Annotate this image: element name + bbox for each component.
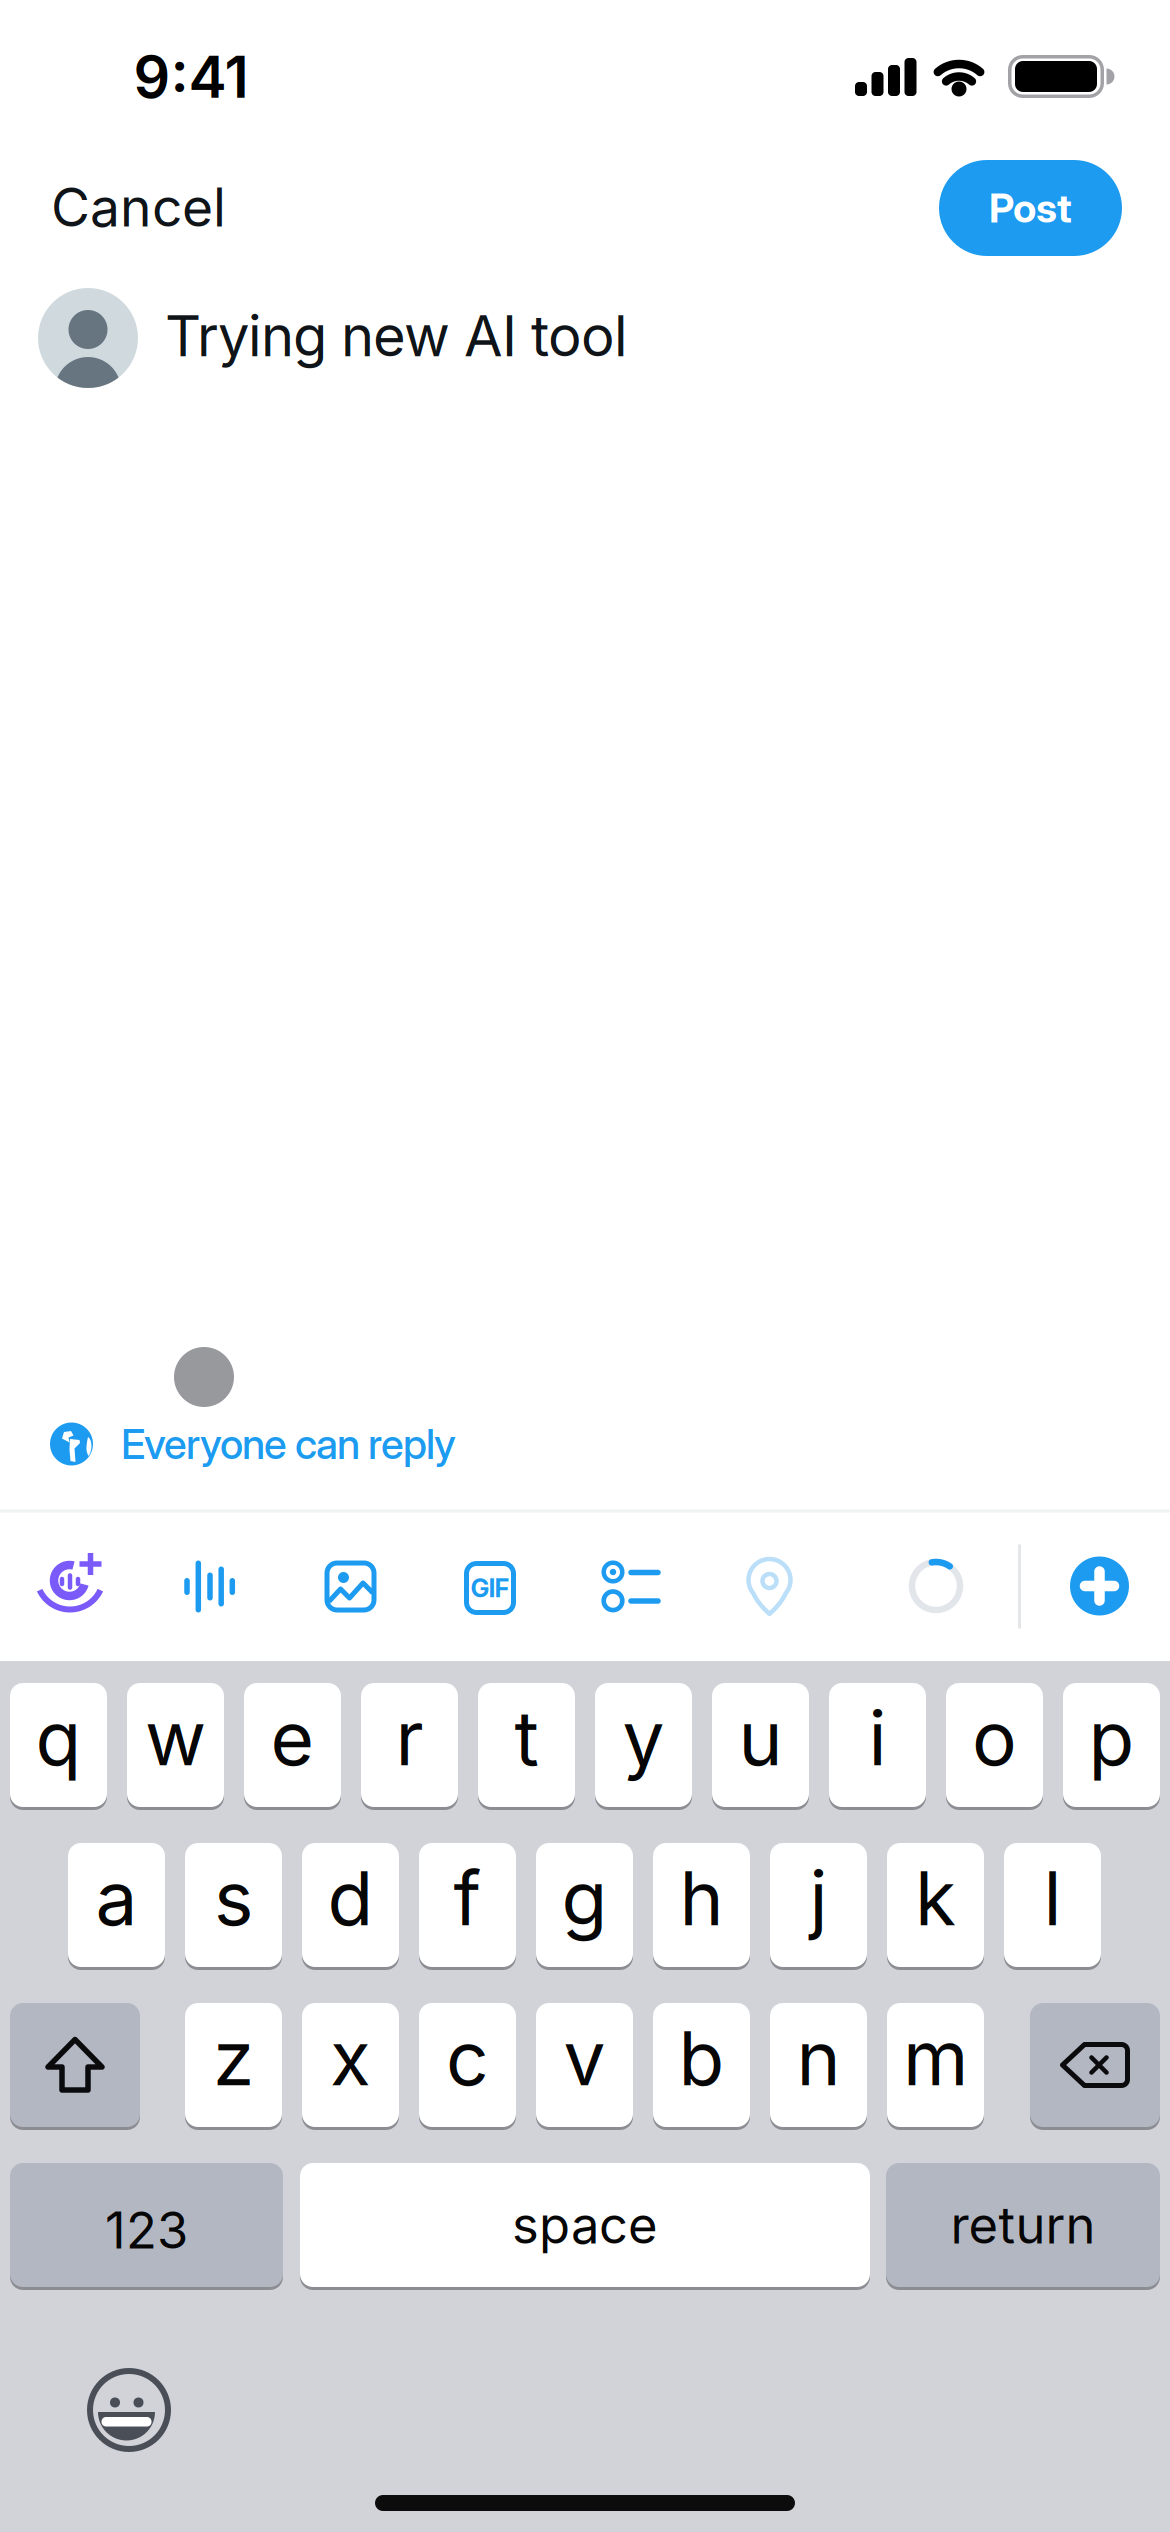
button[interactable]: d [302, 1843, 399, 1967]
button[interactable]: i [829, 1683, 926, 1807]
button[interactable]: 123 [10, 2163, 283, 2287]
staticText: z [213, 2014, 254, 2102]
button[interactable]: h [653, 1843, 750, 1967]
button[interactable]: Add another post [1070, 1556, 1129, 1615]
staticText: y [622, 1694, 664, 1782]
button[interactable]: e [244, 1683, 341, 1807]
button[interactable]: Shift [10, 2003, 140, 2127]
button[interactable]: Emoji [85, 2366, 173, 2454]
button[interactable]: w [127, 1683, 224, 1807]
staticText: return [950, 2195, 1095, 2255]
button[interactable]: r [361, 1683, 458, 1807]
button[interactable]: Add photos or video [324, 1560, 376, 1612]
button[interactable]: l [1004, 1843, 1101, 1967]
button[interactable]: Record audio [182, 1558, 238, 1614]
button[interactable]: q [10, 1683, 107, 1807]
staticText: u [738, 1694, 782, 1782]
staticText: w [145, 1694, 206, 1782]
staticText: a [95, 1854, 137, 1942]
staticText: x [330, 2014, 371, 2102]
button[interactable]: Everyone can reply [0, 0, 1170, 2532]
staticText: GIF [470, 1573, 509, 1603]
staticText: h [679, 1854, 723, 1942]
staticText: c [446, 2014, 489, 2102]
staticText: i [868, 1694, 886, 1782]
staticText: b [678, 2014, 724, 2102]
button[interactable]: g [536, 1843, 633, 1967]
button[interactable]: Add poll [598, 1554, 662, 1618]
button[interactable]: Post [939, 160, 1122, 256]
button[interactable]: f [419, 1843, 516, 1967]
staticText: m [903, 2014, 968, 2102]
staticText: 9:41 [133, 43, 248, 111]
button[interactable]: a [68, 1843, 165, 1967]
staticText: Cancel [51, 175, 226, 238]
staticText: t [514, 1694, 538, 1782]
button[interactable]: y [595, 1683, 692, 1807]
staticText: s [214, 1854, 253, 1942]
button[interactable]: m [887, 2003, 984, 2127]
staticText: 123 [105, 2200, 188, 2260]
staticText: e [270, 1694, 314, 1782]
button[interactable]: z [185, 2003, 282, 2127]
button[interactable]: Add a GIF [464, 1561, 516, 1615]
staticText: k [915, 1854, 956, 1942]
button[interactable]: x [302, 2003, 399, 2127]
button[interactable]: c [419, 2003, 516, 2127]
staticText: o [972, 1694, 1017, 1782]
button[interactable]: v [536, 2003, 633, 2127]
button[interactable]: k [887, 1843, 984, 1967]
button[interactable]: Cancel [0, 0, 1170, 2532]
button[interactable]: n [770, 2003, 867, 2127]
staticText: g [561, 1854, 607, 1942]
button[interactable]: o [946, 1683, 1043, 1807]
button[interactable]: t [478, 1683, 575, 1807]
button[interactable]: Tag location [743, 1556, 795, 1618]
button[interactable]: Enhance with Grok [35, 1549, 105, 1613]
button[interactable]: s [185, 1843, 282, 1967]
staticText: r [395, 1694, 423, 1782]
staticText: d [327, 1854, 373, 1942]
button[interactable]: space [300, 2163, 870, 2287]
button[interactable]: u [712, 1683, 809, 1807]
button[interactable]: b [653, 2003, 750, 2127]
staticText: l [1043, 1854, 1061, 1942]
button[interactable]: Delete [1030, 2003, 1160, 2127]
staticText: n [796, 2014, 840, 2102]
staticText: j [809, 1854, 827, 1942]
staticText: Everyone can reply [121, 1420, 456, 1468]
staticText: p [1088, 1694, 1134, 1782]
button[interactable]: p [1063, 1683, 1160, 1807]
button[interactable]: return [886, 2163, 1160, 2287]
staticText: v [563, 2014, 605, 2102]
button[interactable]: j [770, 1843, 867, 1967]
staticText: q [35, 1694, 81, 1782]
staticText: Trying new AI tool [165, 303, 628, 369]
staticText: Post [989, 184, 1072, 232]
staticText: space [512, 2195, 658, 2255]
staticText: f [453, 1854, 481, 1942]
